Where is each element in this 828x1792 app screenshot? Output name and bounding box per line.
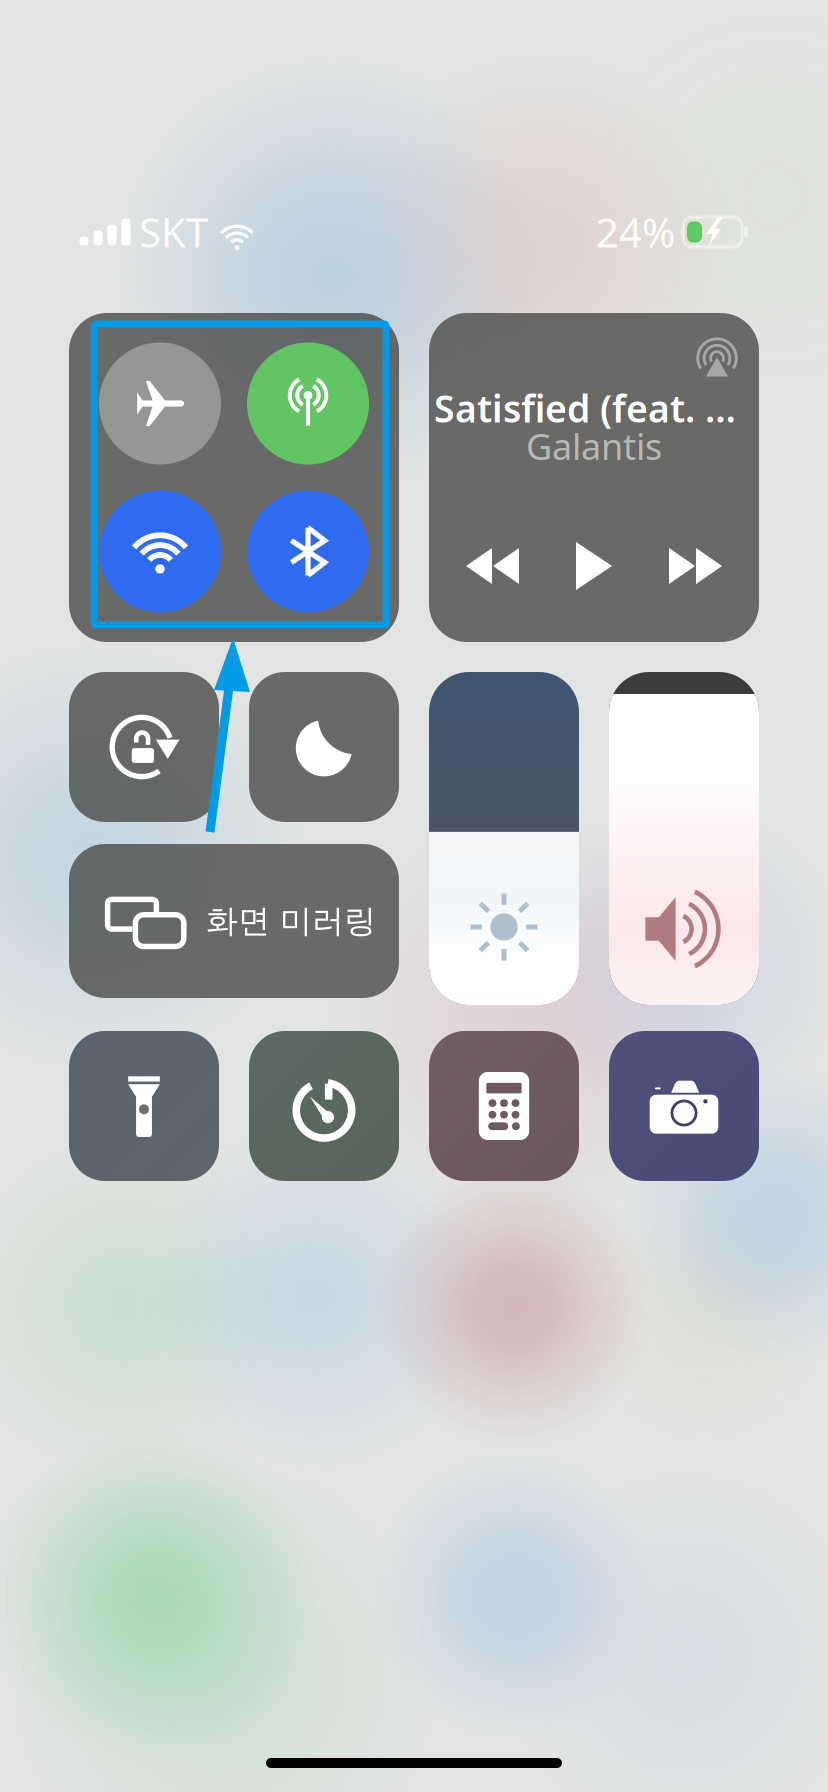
- staticText: SKT: [139, 205, 208, 258]
- button[interactable]: AirPlay: [694, 337, 740, 383]
- button[interactable]: Do Not Disturb: [249, 672, 399, 822]
- button[interactable]: Timer: [249, 1031, 399, 1181]
- button[interactable]: Next Track: [669, 548, 723, 584]
- button[interactable]: Wi-Fi: [99, 490, 221, 612]
- staticText: 화면 미러링: [206, 901, 376, 941]
- button[interactable]: Play: [576, 542, 612, 590]
- button[interactable]: Volume: [609, 672, 759, 1005]
- staticText: 24%: [596, 205, 675, 258]
- button[interactable]: Calculator: [429, 1031, 579, 1181]
- staticText: Galantis: [526, 422, 662, 470]
- staticText: Satisfied (feat. MA…: [434, 383, 754, 433]
- button[interactable]: Airplane Mode: [99, 342, 221, 464]
- button[interactable]: Cellular Data: [247, 342, 369, 464]
- button[interactable]: Rotation Lock: [69, 672, 219, 822]
- button[interactable]: Previous Track: [465, 548, 519, 584]
- button[interactable]: Flashlight: [69, 1031, 219, 1181]
- button[interactable]: Brightness: [429, 672, 579, 1005]
- button[interactable]: 화면 미러링: [69, 844, 399, 998]
- button[interactable]: Camera: [609, 1031, 759, 1181]
- button[interactable]: Bluetooth: [247, 490, 369, 612]
